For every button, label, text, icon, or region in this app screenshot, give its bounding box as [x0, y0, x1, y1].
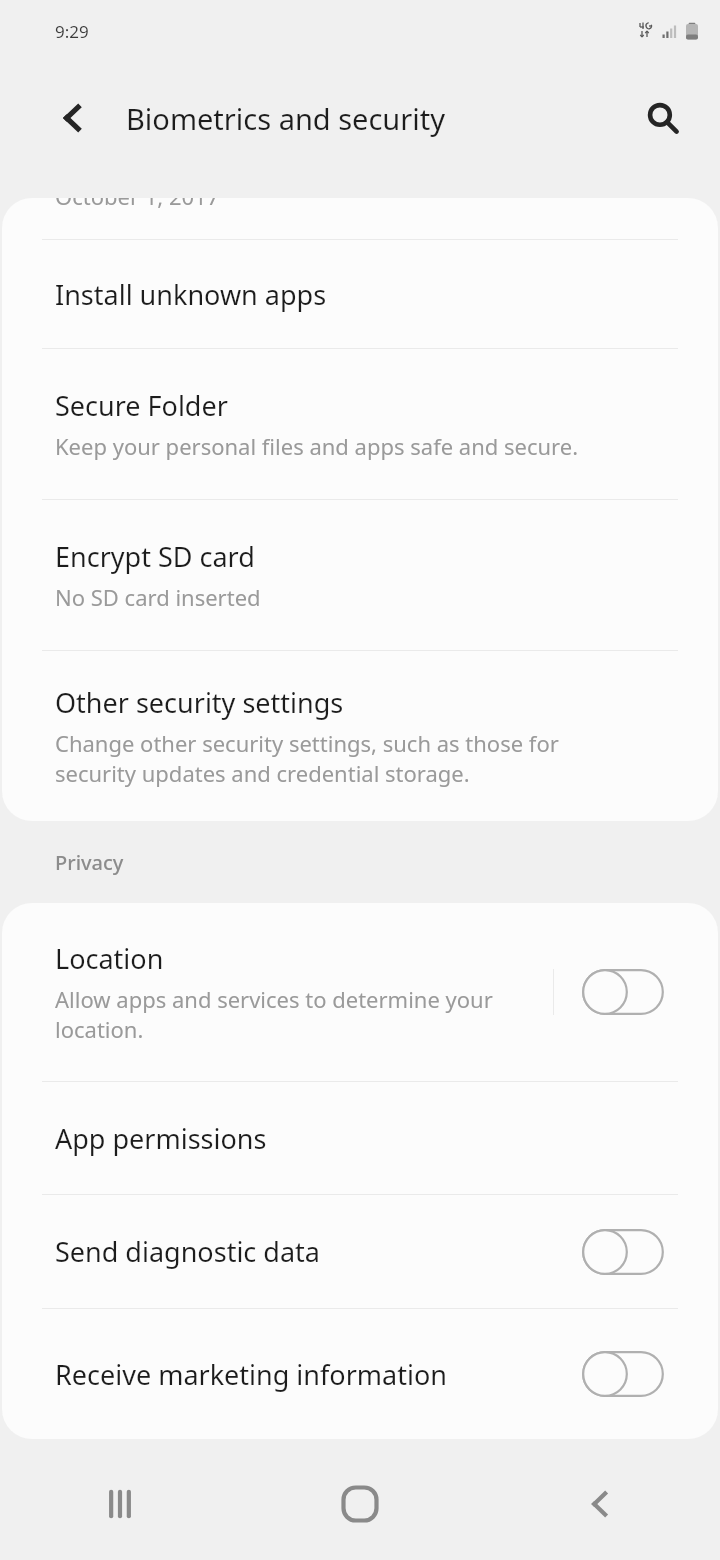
staticText: Install unknown apps: [55, 276, 327, 313]
button[interactable]: Send diagnostic data toggle, off: [582, 1229, 664, 1275]
button[interactable]: Back: [480, 1448, 720, 1560]
button[interactable]: Search: [632, 87, 694, 149]
button[interactable]: App permissions: [2, 1082, 718, 1194]
staticText: Send diagnostic data: [55, 1233, 320, 1270]
button[interactable]: Location toggle, off: [582, 969, 664, 1015]
button[interactable]: Home: [240, 1448, 480, 1560]
button[interactable]: Send diagnostic data: [2, 1195, 718, 1308]
button[interactable]: Recent apps: [0, 1448, 240, 1560]
staticText: Keep your personal files and apps safe a…: [55, 431, 634, 461]
button[interactable]: Encrypt SD card: [2, 500, 718, 650]
staticText: App permissions: [55, 1120, 267, 1157]
button[interactable]: Location: [2, 903, 718, 1081]
button[interactable]: Receive marketing information toggle, of…: [582, 1351, 664, 1397]
staticText: Secure Folder: [55, 387, 228, 424]
staticText: Change other security settings, such as …: [55, 728, 634, 789]
staticText: 9:29: [55, 20, 89, 43]
staticText: Biometrics and security: [126, 99, 446, 138]
button[interactable]: Navigate up: [42, 87, 104, 149]
button[interactable]: Receive marketing information: [2, 1309, 718, 1439]
staticText: No SD card inserted: [55, 582, 634, 612]
button[interactable]: Install unknown apps: [2, 240, 718, 348]
staticText: Privacy: [55, 849, 124, 876]
staticText: Other security settings: [55, 684, 344, 721]
staticText: Encrypt SD card: [55, 538, 255, 575]
button[interactable]: Secure Folder: [2, 349, 718, 499]
staticText: Allow apps and services to determine you…: [55, 984, 510, 1045]
staticText: Receive marketing information: [55, 1356, 447, 1393]
staticText: October 1, 2017: [55, 198, 220, 211]
staticText: Location: [55, 940, 164, 977]
button[interactable]: Other security settings: [2, 651, 718, 821]
